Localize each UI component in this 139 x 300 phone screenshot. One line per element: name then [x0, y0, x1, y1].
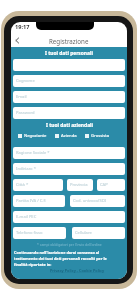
button[interactable]: Grossista [85, 133, 110, 139]
staticText: Cellulare [75, 230, 92, 236]
staticText: Città * [16, 182, 29, 188]
button[interactable]: Cellulare [72, 227, 125, 239]
staticText: Azienda [61, 133, 77, 139]
button[interactable]: Email [13, 91, 125, 103]
staticText: Negoziante [24, 133, 47, 139]
button[interactable]: Cognome [13, 75, 125, 87]
staticText: 19:17 [15, 23, 30, 31]
staticText: E-mail PEC [16, 214, 37, 220]
staticText: Provincia [70, 182, 88, 188]
button[interactable]: Città * [13, 179, 63, 191]
staticText: Cod. univoco/SDI [73, 198, 107, 204]
button[interactable]: Negoziante [18, 133, 47, 139]
button[interactable]: Indirizzo * [13, 163, 125, 175]
button[interactable]: Privacy Policy - Cookie Policy [50, 268, 105, 273]
button[interactable]: Cod. univoco/SDI [70, 195, 125, 207]
staticText: Partita IVA / C.F. [16, 198, 47, 204]
staticText: Privacy Policy - Cookie Policy [50, 268, 105, 273]
staticText: CAP [100, 182, 108, 188]
button[interactable]: Provincia [67, 179, 93, 191]
staticText: * campi obbligatori per l'invio dell'ord… [37, 242, 102, 247]
staticText: trattamento dei tuoi dati personali racc… [14, 256, 107, 261]
button[interactable]: E-mail PEC [13, 211, 125, 223]
staticText: finalità riportate in: [14, 262, 53, 267]
staticText: Continuando nell'iscrizione darai consen… [14, 250, 100, 255]
button[interactable]: Password [13, 107, 125, 119]
staticText: I tuoi dati personali [45, 50, 93, 57]
staticText: Grossista [91, 133, 110, 139]
button[interactable]: Telefono fisso [13, 227, 66, 239]
button[interactable]: Back [12, 35, 23, 46]
staticText: Password [16, 110, 35, 116]
staticText: Indirizzo * [16, 166, 36, 172]
staticText: Telefono fisso [16, 230, 43, 236]
button[interactable]: Ragione Sociale * [13, 147, 125, 159]
staticText: Ragione Sociale * [16, 150, 50, 156]
button[interactable]: Azienda [55, 133, 77, 139]
staticText: I tuoi dati aziendali [46, 122, 93, 129]
staticText: Registrazione [49, 37, 89, 45]
button[interactable]: finalità riportate in: [14, 262, 53, 267]
button[interactable]: Partita IVA / C.F. [13, 195, 65, 207]
staticText: Cognome [16, 78, 35, 84]
staticText: Email [16, 94, 27, 100]
button[interactable] [13, 59, 125, 71]
button[interactable]: CAP [97, 179, 125, 191]
